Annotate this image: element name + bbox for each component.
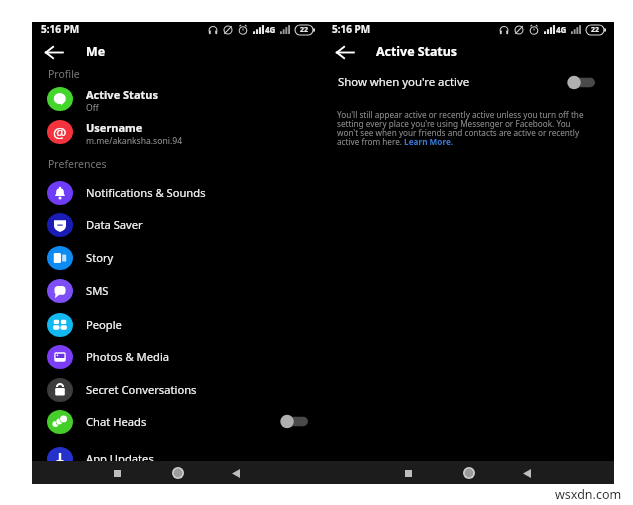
staticText: m.me/akanksha.soni.94 bbox=[86, 135, 183, 147]
button[interactable]: Toggle bbox=[280, 414, 308, 429]
staticText: Photos & Media bbox=[86, 349, 170, 364]
button[interactable]: Home bbox=[458, 462, 480, 484]
button[interactable]: Active Status bbox=[32, 82, 323, 115]
button[interactable]: Recent apps bbox=[106, 462, 128, 484]
button[interactable]: Notifications & Sounds bbox=[32, 176, 323, 209]
staticText: Active Status bbox=[86, 87, 158, 102]
staticText: 22 bbox=[591, 25, 600, 35]
staticText: Active Status bbox=[376, 43, 458, 60]
button[interactable]: Back bbox=[334, 41, 356, 63]
button[interactable]: Story bbox=[32, 241, 323, 274]
staticText: Profile bbox=[48, 67, 80, 81]
staticText: App Updates bbox=[86, 451, 154, 466]
button[interactable]: Toggle bbox=[567, 75, 595, 90]
staticText: 5:16 PM bbox=[41, 22, 80, 36]
staticText: 4G bbox=[556, 24, 567, 35]
staticText: Me bbox=[86, 43, 106, 60]
button[interactable]: Back bbox=[43, 41, 65, 63]
button[interactable]: @ bbox=[32, 115, 323, 148]
staticText: Show when you're active bbox=[338, 74, 470, 90]
button[interactable]: App Updates bbox=[32, 442, 323, 475]
staticText: Secret Conversations bbox=[86, 382, 197, 397]
staticText: Chat Heads bbox=[86, 414, 147, 429]
staticText: You'll still appear active or recently a… bbox=[337, 109, 593, 147]
staticText: Preferences bbox=[48, 157, 107, 171]
button[interactable]: Back bbox=[516, 462, 538, 484]
button[interactable]: Back bbox=[225, 462, 247, 484]
staticText: wsxdn.com bbox=[555, 486, 622, 503]
button[interactable]: SMS bbox=[32, 274, 323, 307]
staticText: 22 bbox=[300, 25, 309, 35]
staticText: 4G bbox=[265, 24, 276, 35]
staticText: 5:16 PM bbox=[332, 22, 371, 36]
staticText: Data Saver bbox=[86, 217, 143, 232]
button[interactable]: Chat Heads bbox=[32, 405, 323, 438]
button[interactable]: Photos & Media bbox=[32, 340, 323, 373]
button[interactable]: People bbox=[32, 308, 323, 341]
staticText: Username bbox=[86, 120, 143, 135]
button[interactable]: Show when you're active bbox=[323, 69, 614, 95]
staticText: Off bbox=[86, 102, 99, 114]
button[interactable]: Recent apps bbox=[397, 462, 419, 484]
staticText: Story bbox=[86, 250, 114, 265]
button[interactable]: Home bbox=[167, 462, 189, 484]
button[interactable]: Data Saver bbox=[32, 208, 323, 241]
staticText: SMS bbox=[86, 283, 109, 298]
button[interactable]: Secret Conversations bbox=[32, 373, 323, 406]
staticText: People bbox=[86, 317, 122, 332]
staticText: Notifications & Sounds bbox=[86, 185, 206, 200]
staticText: @ bbox=[53, 122, 67, 142]
